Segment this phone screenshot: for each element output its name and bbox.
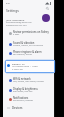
- staticText: Wifi & network: [13, 77, 31, 80]
- staticText: Wifi, mobile, data usage, hotspot: [13, 80, 44, 83]
- staticText: Sound & vibration: [13, 41, 35, 44]
- staticText: No charging cable | Cable: [12, 65, 38, 68]
- staticText: Settings: [6, 8, 19, 13]
- staticText: Notifications: [13, 96, 29, 99]
- staticText: Display & brightness: [13, 87, 38, 90]
- staticText: Devices: [12, 106, 23, 110]
- button[interactable]: Search: [46, 7, 49, 10]
- button[interactable]: Wifi & network: [3, 75, 54, 85]
- staticText: Dark mode, font size: [13, 90, 33, 93]
- button[interactable]: Review permissions on Sidney: [3, 28, 54, 38]
- staticText: Permissions, bubbles: [13, 99, 33, 102]
- button[interactable]: Phone ringtone & alarm: [3, 48, 54, 58]
- staticText: Phone ringtone & alarm: [13, 50, 42, 53]
- button[interactable]: Display & brightness: [3, 85, 54, 95]
- staticText: Volume, haptics, Do Not Disturb: [13, 44, 44, 47]
- button[interactable]: Sound & vibration: [3, 39, 54, 49]
- staticText: Set ringtone, alarms: [13, 53, 33, 56]
- button[interactable]: Devices: [3, 103, 54, 112]
- staticText: Battery: 45: [12, 62, 25, 65]
- staticText: 2 hours left: [12, 68, 23, 71]
- staticText: johnappleseed@gmail.com: [6, 21, 32, 24]
- button[interactable]: Notifications: [3, 94, 54, 104]
- staticText: John Appleseed: [6, 18, 25, 21]
- staticText: 9:41: [6, 2, 11, 5]
- button[interactable]: John Appleseed: [3, 13, 54, 23]
- button[interactable]: [5, 60, 55, 73]
- staticText: 2 apps: [13, 33, 20, 36]
- staticText: Suggestions for you: [6, 24, 27, 27]
- staticText: Review permissions on Sidney: [13, 30, 49, 33]
